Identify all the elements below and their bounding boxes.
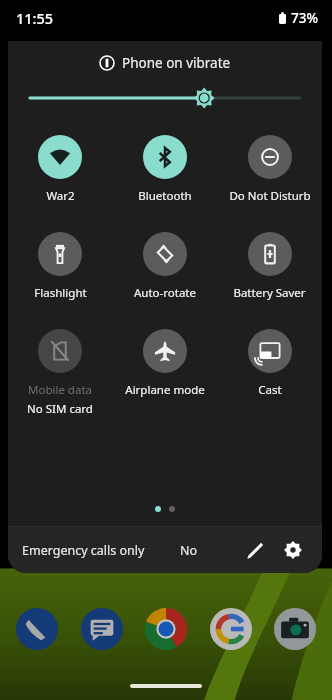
button[interactable]: Do Not Disturb bbox=[217, 133, 322, 206]
staticText: Airplane mode bbox=[125, 382, 205, 398]
staticText: Battery Saver bbox=[233, 285, 306, 301]
other: Do Not Disturb bbox=[248, 135, 292, 179]
staticText: Mobile data bbox=[28, 382, 92, 398]
button[interactable]: Flashlight bbox=[8, 230, 112, 303]
button[interactable]: Airplane mode bbox=[112, 327, 217, 400]
other: War2 bbox=[38, 135, 82, 179]
staticText: War2 bbox=[46, 188, 75, 204]
staticText: Flashlight bbox=[34, 285, 87, 301]
button[interactable]: Settings bbox=[276, 533, 310, 567]
other: Airplane mode bbox=[143, 329, 187, 373]
other: Cast bbox=[248, 329, 292, 373]
button[interactable]: Chrome bbox=[143, 606, 189, 652]
other: Flashlight bbox=[38, 232, 82, 276]
button[interactable]: Camera bbox=[272, 606, 318, 652]
button[interactable]: Messages bbox=[79, 606, 125, 652]
button[interactable]: Phone bbox=[14, 606, 60, 652]
staticText: Do Not Disturb bbox=[229, 188, 311, 204]
button[interactable]: War2 bbox=[8, 133, 112, 206]
button[interactable]: Mobile data bbox=[8, 327, 112, 419]
button[interactable]: Battery Saver bbox=[217, 230, 322, 303]
staticText: Emergency calls only bbox=[22, 542, 145, 559]
staticText: 11:55 bbox=[16, 8, 54, 28]
button[interactable]: Emergency calls only bbox=[22, 542, 145, 559]
staticText: No bbox=[180, 542, 198, 559]
other: Auto-rotate bbox=[143, 232, 187, 276]
other: Battery Saver bbox=[248, 232, 292, 276]
staticText: Auto-rotate bbox=[134, 285, 196, 301]
other: Bluetooth bbox=[143, 135, 187, 179]
button[interactable]: Bluetooth bbox=[112, 133, 217, 206]
staticText: 73% bbox=[291, 9, 318, 27]
button[interactable]: Edit bbox=[238, 533, 272, 567]
staticText: Phone on vibrate bbox=[122, 54, 231, 72]
other: Mobile data bbox=[38, 329, 82, 373]
button[interactable]: Google bbox=[208, 606, 254, 652]
staticText: Bluetooth bbox=[138, 188, 192, 204]
button[interactable]: Auto-rotate bbox=[112, 230, 217, 303]
staticText: Cast bbox=[258, 382, 282, 398]
staticText: No SIM card bbox=[27, 401, 93, 417]
button[interactable]: Cast bbox=[217, 327, 322, 400]
